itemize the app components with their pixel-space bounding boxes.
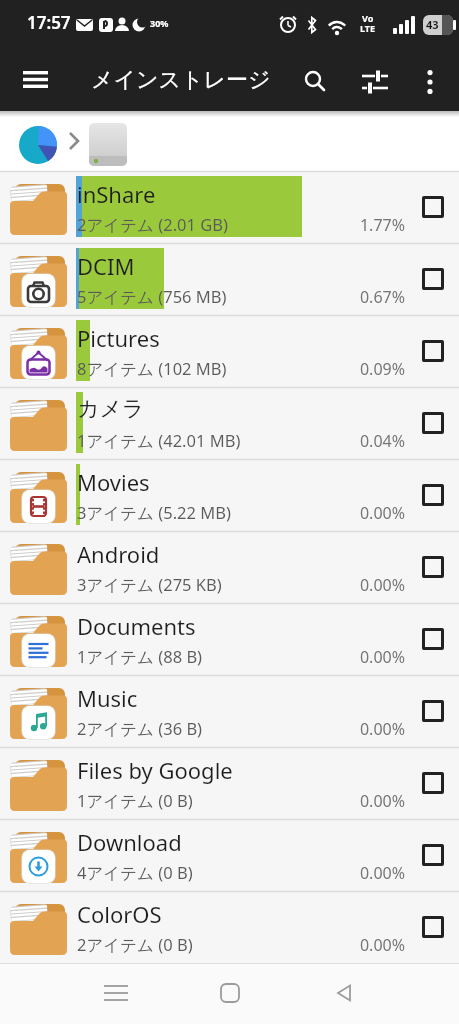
button[interactable] <box>89 123 127 166</box>
staticText: 0.00% <box>305 502 405 524</box>
staticText: Download <box>77 827 182 857</box>
staticText: DCIM <box>77 251 135 281</box>
button[interactable]: Download <box>0 819 459 891</box>
button[interactable]: Documents <box>0 603 459 675</box>
staticText: 3アイテム (275 KB) <box>77 573 222 596</box>
button[interactable] <box>422 196 444 218</box>
button[interactable] <box>422 844 444 866</box>
button[interactable]: Movies <box>0 459 459 531</box>
staticText: LTE <box>360 22 376 34</box>
staticText: 2アイテム (0 B) <box>77 933 193 956</box>
button[interactable] <box>355 62 395 102</box>
button[interactable] <box>422 916 444 938</box>
button[interactable] <box>295 62 335 102</box>
staticText: Music <box>77 683 138 713</box>
button[interactable] <box>422 484 444 506</box>
button[interactable]: カメラ <box>0 387 459 459</box>
button[interactable] <box>410 62 450 102</box>
button[interactable]: Pictures <box>0 315 459 387</box>
button[interactable] <box>422 268 444 290</box>
staticText: 0.00% <box>305 862 405 884</box>
button[interactable] <box>422 340 444 362</box>
button[interactable]: Android <box>0 531 459 603</box>
staticText: 0.00% <box>305 718 405 740</box>
button[interactable] <box>325 973 365 1013</box>
staticText: 2アイテム (2.01 GB) <box>77 213 228 236</box>
staticText: 43 <box>426 17 439 32</box>
button[interactable]: ColorOS <box>0 891 459 963</box>
staticText: 30% <box>150 17 169 29</box>
staticText: 0.00% <box>305 646 405 668</box>
staticText: Vo <box>362 12 374 24</box>
button[interactable] <box>96 973 136 1013</box>
staticText: 17:57 <box>27 11 71 34</box>
button[interactable]: DCIM <box>0 243 459 315</box>
button[interactable]: Files by Google <box>0 747 459 819</box>
staticText: 2アイテム (36 B) <box>77 717 203 740</box>
staticText: Movies <box>77 467 150 497</box>
staticText: 1.77% <box>305 214 405 236</box>
button[interactable]: inShare <box>0 171 459 243</box>
staticText: 3アイテム (5.22 MB) <box>77 501 231 524</box>
button[interactable] <box>422 772 444 794</box>
button[interactable] <box>422 412 444 434</box>
staticText: 0.09% <box>305 358 405 380</box>
staticText: 8アイテム (102 MB) <box>77 357 227 380</box>
staticText: inShare <box>77 179 156 209</box>
staticText: 1アイテム (0 B) <box>77 789 193 812</box>
staticText: 0.00% <box>305 790 405 812</box>
staticText: Files by Google <box>77 755 233 785</box>
staticText: Documents <box>77 611 196 641</box>
button[interactable] <box>422 700 444 722</box>
staticText: 0.00% <box>305 934 405 956</box>
button[interactable] <box>210 973 250 1013</box>
staticText: Android <box>77 539 160 569</box>
button[interactable] <box>422 628 444 650</box>
staticText: Pictures <box>77 323 160 353</box>
staticText: 4アイテム (0 B) <box>77 861 193 884</box>
staticText: 0.00% <box>305 574 405 596</box>
staticText: メインストレージ <box>91 66 271 94</box>
staticText: 5アイテム (756 MB) <box>77 285 227 308</box>
button[interactable] <box>422 556 444 578</box>
staticText: カメラ <box>77 395 145 423</box>
staticText: ColorOS <box>77 899 162 929</box>
button[interactable] <box>16 62 56 102</box>
staticText: 1アイテム (88 B) <box>77 645 203 668</box>
button[interactable] <box>18 125 58 165</box>
staticText: 0.67% <box>305 286 405 308</box>
staticText: 0.04% <box>305 430 405 452</box>
staticText: 1アイテム (42.01 MB) <box>77 429 241 452</box>
button[interactable]: Music <box>0 675 459 747</box>
